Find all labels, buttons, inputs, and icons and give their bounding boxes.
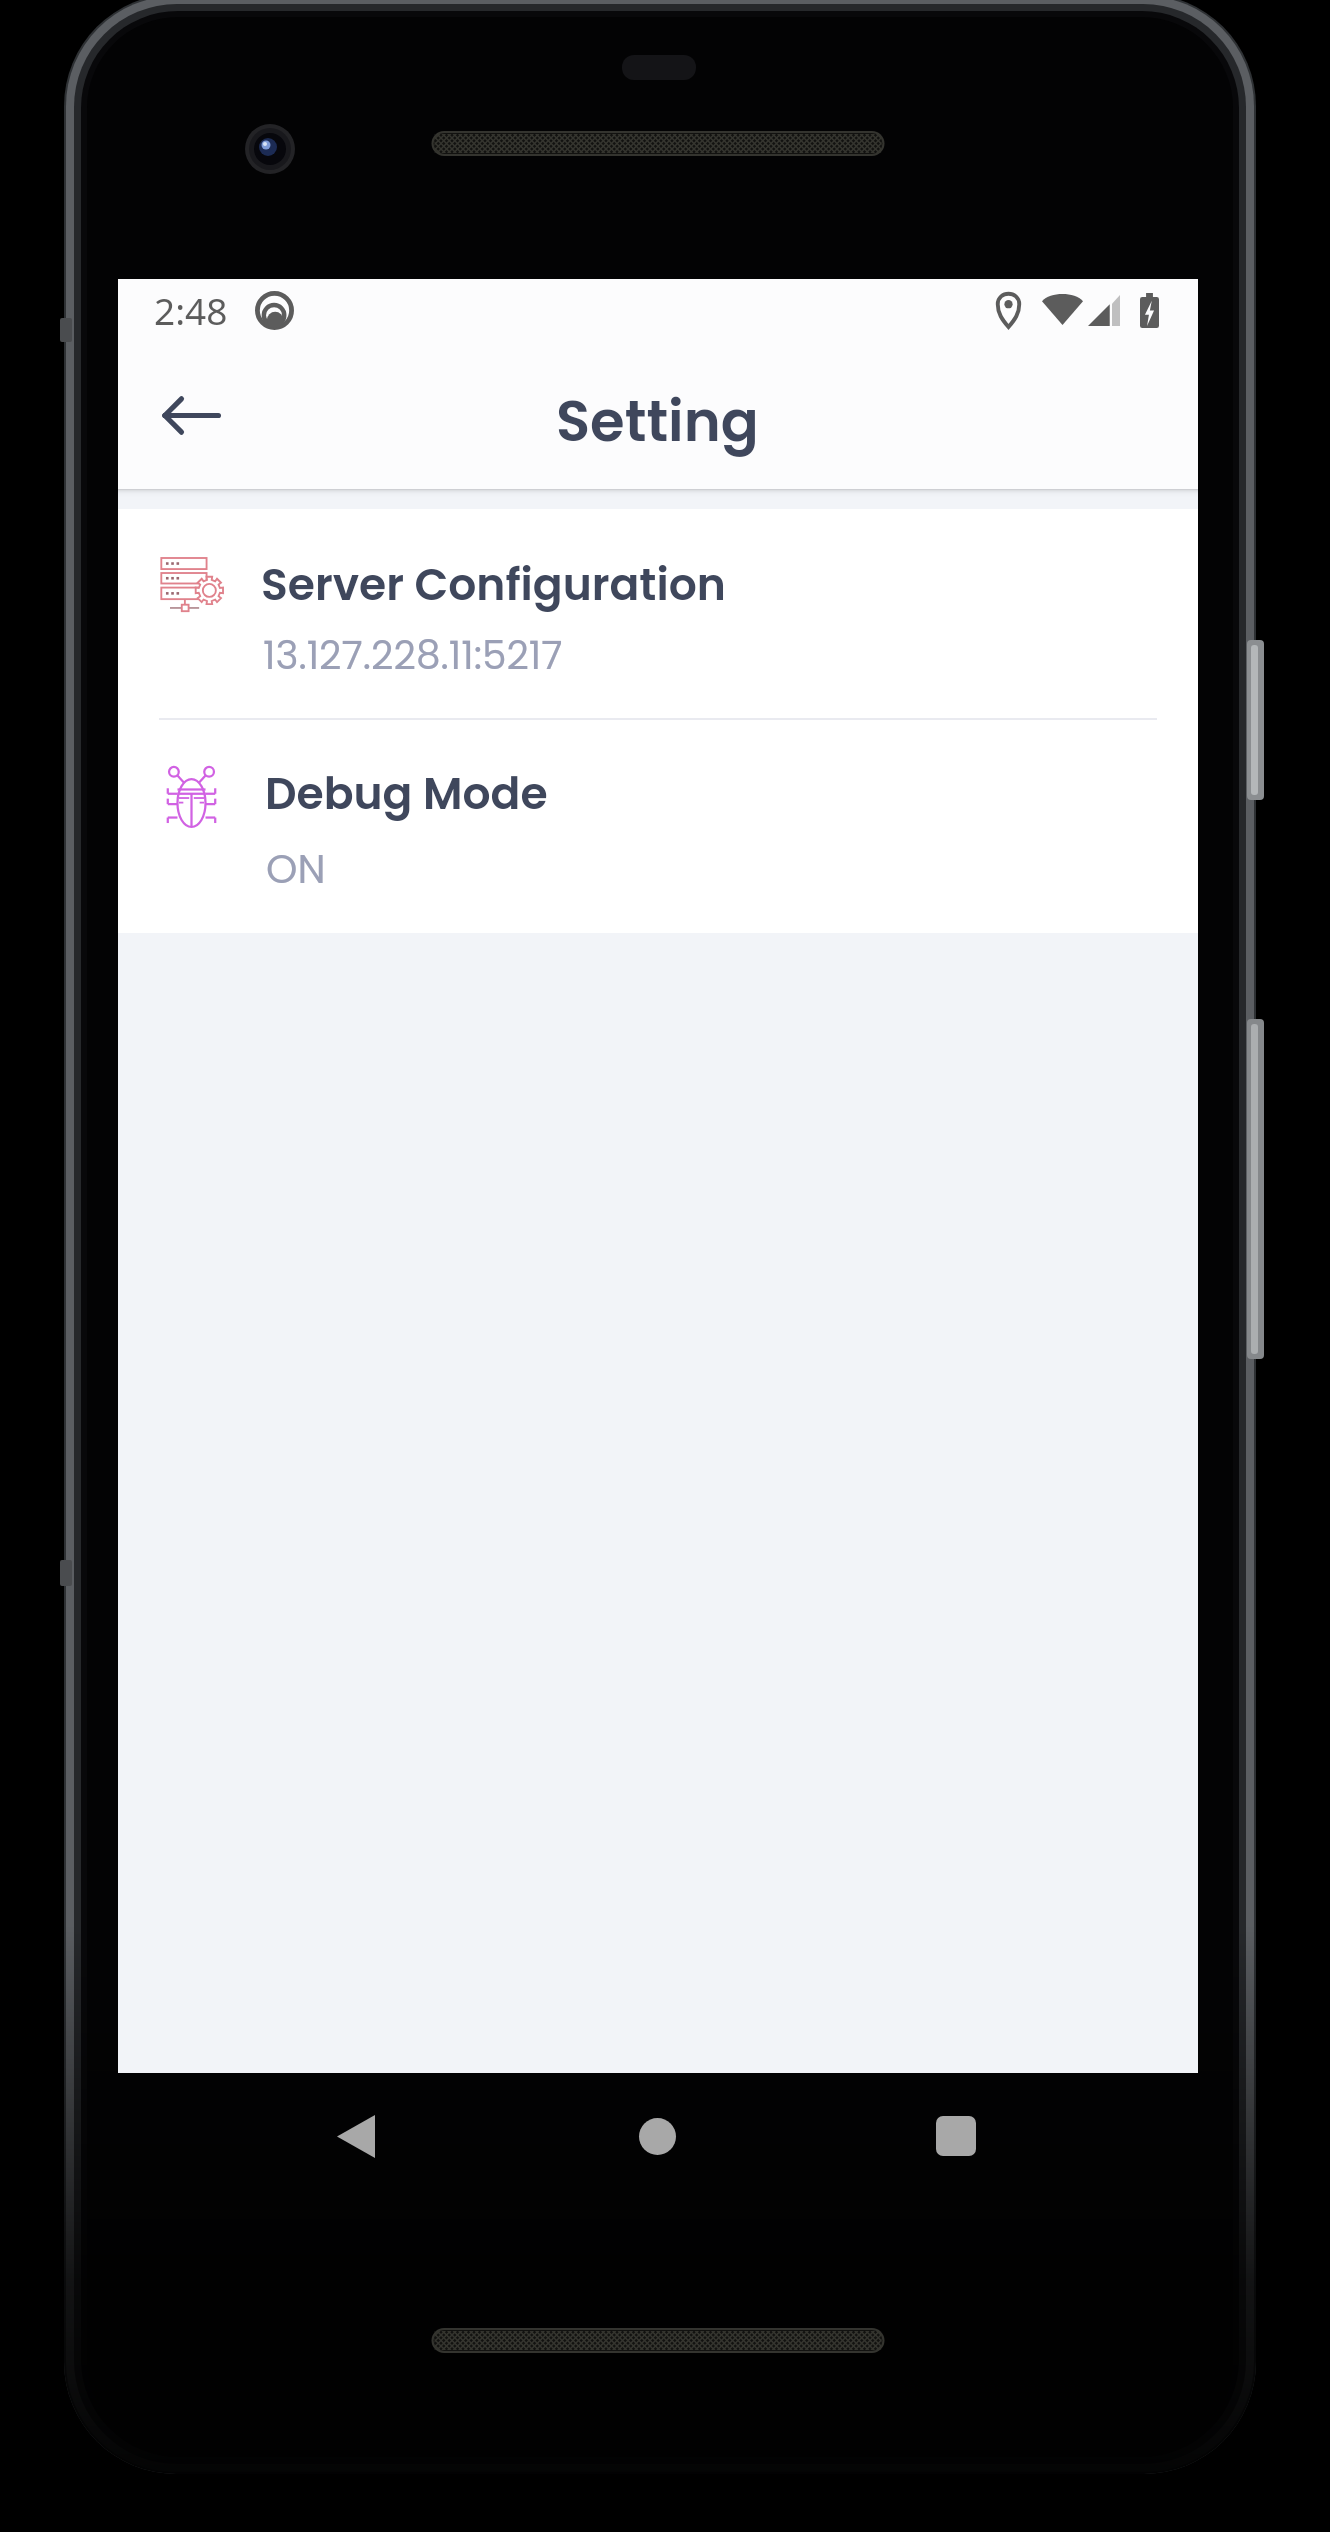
staticText: 13.127.228.11:5217 [263,628,563,683]
staticText: Debug Mode [265,763,548,825]
button[interactable]: Recent apps [920,2106,992,2166]
button[interactable]: Home [622,2107,692,2165]
staticText: Setting [556,382,759,460]
staticText: ON [266,841,326,897]
staticText: 2:48 [154,285,228,335]
button[interactable] [118,509,1198,718]
button[interactable] [118,720,1198,933]
button[interactable]: Back [321,2105,391,2167]
button[interactable]: Back [138,373,244,457]
staticText: Server Configuration [261,554,726,616]
